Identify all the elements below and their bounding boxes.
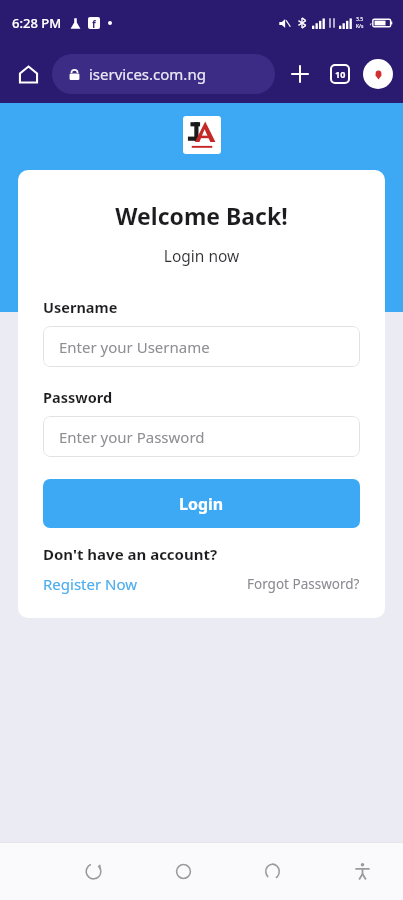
button[interactable]: Reload <box>70 848 116 894</box>
staticText: Welcome Back! <box>43 200 360 231</box>
staticText: Forgot Password? <box>247 575 360 593</box>
staticText: Password <box>43 387 113 407</box>
button[interactable]: Register Now <box>43 574 138 594</box>
button[interactable]: Enter your Username <box>43 326 360 367</box>
button[interactable]: Home <box>10 56 46 92</box>
staticText: Register Now <box>43 574 138 594</box>
button[interactable]: iservices.com.ng <box>52 54 275 94</box>
button[interactable]: Forgot Password? <box>247 575 360 593</box>
staticText: Don't have an account? <box>43 544 218 564</box>
staticText: Enter your Username <box>59 337 210 357</box>
staticText: Username <box>43 297 118 317</box>
button[interactable]: Back <box>249 848 295 894</box>
staticText: K/s <box>356 23 364 30</box>
staticText: f <box>92 17 96 29</box>
button[interactable]: New tab <box>283 57 317 91</box>
staticText: Login <box>179 493 224 515</box>
staticText: Login now <box>43 245 360 266</box>
staticText: iservices.com.ng <box>89 64 206 84</box>
staticText: 3.5 <box>356 16 364 23</box>
staticText: 10 <box>335 68 346 80</box>
button[interactable]: Accessibility <box>339 848 385 894</box>
button[interactable]: Login <box>43 479 360 528</box>
staticText: Enter your Password <box>59 427 205 447</box>
button[interactable]: Enter your Password <box>43 416 360 457</box>
button[interactable]: Home <box>160 848 206 894</box>
button[interactable]: Menu <box>363 59 393 89</box>
button[interactable]: Tabs <box>323 57 357 91</box>
staticText: 6:28 PM <box>12 14 62 32</box>
